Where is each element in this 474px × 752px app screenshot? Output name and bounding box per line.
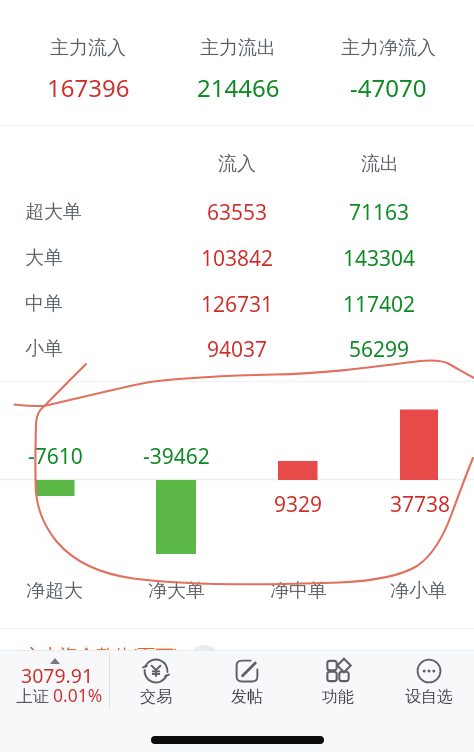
- staticText: 214466: [197, 71, 280, 104]
- staticText: 103842: [201, 244, 274, 273]
- button[interactable]: Trade: [110, 651, 201, 711]
- staticText: 71163: [349, 198, 410, 227]
- staticText: 功能: [322, 687, 354, 707]
- staticText: 63553: [207, 198, 268, 227]
- staticText: 流入: [218, 152, 256, 176]
- staticText: 交易: [140, 687, 172, 707]
- staticText: 126731: [201, 290, 274, 319]
- staticText: -39462: [143, 442, 210, 471]
- staticText: 设自选: [405, 687, 453, 707]
- staticText: 56299: [349, 335, 410, 364]
- staticText: 主力净流入: [341, 36, 436, 60]
- staticText: 3079.91: [21, 662, 94, 689]
- button[interactable]: Features: [292, 651, 383, 711]
- staticText: 发帖: [231, 687, 263, 707]
- staticText: 主力流出: [200, 36, 276, 60]
- staticText: 上证: [16, 686, 49, 707]
- staticText: 94037: [207, 335, 268, 364]
- button[interactable]: Watchlist: [383, 651, 474, 711]
- staticText: 小单: [25, 337, 63, 361]
- staticText: 净小单: [390, 579, 447, 603]
- staticText: 大单: [25, 246, 63, 270]
- staticText: 0.01%: [53, 683, 103, 707]
- staticText: -47070: [350, 71, 427, 104]
- staticText: 9329: [274, 490, 323, 519]
- staticText: 中单: [25, 292, 63, 316]
- button[interactable]: Post: [201, 651, 292, 711]
- staticText: 流出: [361, 152, 399, 176]
- staticText: 净超大: [26, 579, 83, 603]
- staticText: 37738: [390, 490, 451, 519]
- staticText: 主力流入: [50, 36, 126, 60]
- staticText: -7610: [28, 442, 83, 471]
- button[interactable]: 3079.91: [0, 651, 109, 711]
- staticText: 167396: [47, 71, 130, 104]
- staticText: 143304: [343, 244, 416, 273]
- staticText: 117402: [343, 290, 416, 319]
- staticText: 主力资金整体(百万): [24, 643, 179, 668]
- staticText: 超大单: [25, 200, 82, 224]
- staticText: 净中单: [270, 579, 327, 603]
- staticText: 净大单: [148, 579, 205, 603]
